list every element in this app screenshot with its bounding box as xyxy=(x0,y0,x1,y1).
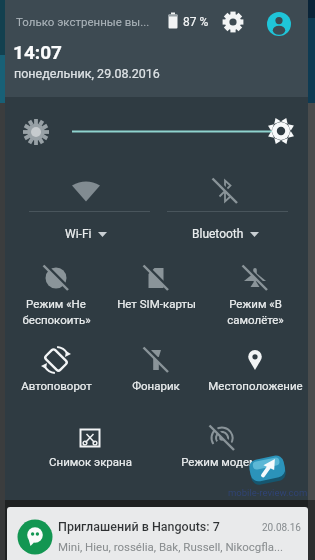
button[interactable] xyxy=(206,258,306,333)
button[interactable] xyxy=(6,342,106,400)
staticText: 14:07 xyxy=(13,41,62,63)
staticText: Только экстренные вы... xyxy=(16,15,150,28)
staticText: 87 % xyxy=(183,15,209,29)
button[interactable] xyxy=(16,170,156,212)
staticText: Снимок экрана xyxy=(49,455,132,468)
staticText: понедельник, 29.08.2016 xyxy=(14,66,160,81)
staticText: Wi-Fi xyxy=(65,227,92,241)
staticText: беспокоить» xyxy=(22,313,91,326)
button[interactable]: Приглашений в Hangouts: 7 xyxy=(7,507,308,560)
button[interactable]: Wi-Fi xyxy=(11,224,161,244)
staticText: Местоположение xyxy=(208,379,303,392)
button[interactable] xyxy=(6,258,106,333)
staticText: Фонарик xyxy=(132,379,180,392)
button[interactable] xyxy=(267,12,291,36)
button[interactable] xyxy=(220,9,246,35)
staticText: Приглашений в Hangouts: 7 xyxy=(58,519,220,534)
staticText: Режим модема xyxy=(181,455,264,468)
staticText: Режим «Не xyxy=(26,297,86,310)
button[interactable] xyxy=(106,342,206,400)
button[interactable] xyxy=(206,342,306,400)
staticText: 20.08.16 xyxy=(262,522,301,534)
staticText: Автоповорот xyxy=(21,379,92,392)
button[interactable] xyxy=(160,420,300,478)
button[interactable] xyxy=(106,258,206,333)
staticText: самолёте» xyxy=(227,313,284,326)
staticText: Mini, Hieu, rossélia, Bak, Russell, Niko… xyxy=(58,540,284,553)
button[interactable] xyxy=(20,420,160,478)
button[interactable] xyxy=(15,110,295,154)
staticText: Bluetooth xyxy=(192,227,244,241)
staticText: mobile-review.com xyxy=(228,487,308,498)
staticText: Режим «В xyxy=(229,297,282,310)
button[interactable]: Bluetooth xyxy=(150,224,300,244)
button[interactable] xyxy=(155,170,295,212)
staticText: Нет SIM-карты xyxy=(117,297,196,310)
